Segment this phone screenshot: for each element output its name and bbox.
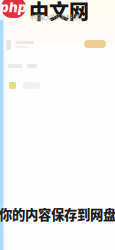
staticText: php bbox=[0, 0, 27, 16]
staticText: 你的内容保存到网盘 bbox=[0, 204, 115, 224]
staticText: 中国最大的开发者社区 bbox=[30, 13, 80, 21]
staticText: 你的内容保存到网盘 bbox=[0, 204, 115, 224]
staticText: 中文网 bbox=[29, 0, 89, 25]
